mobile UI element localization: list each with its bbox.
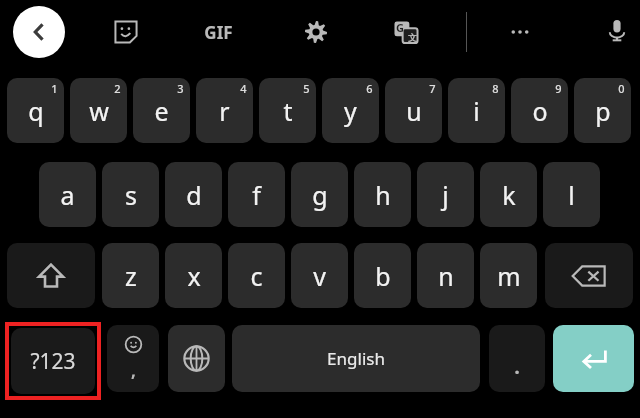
button[interactable]: k	[480, 162, 537, 227]
button[interactable]: Change language	[168, 325, 225, 392]
staticText: x	[187, 259, 201, 293]
staticText: 9	[555, 81, 562, 96]
button[interactable]: u	[385, 78, 442, 143]
staticText: c	[250, 259, 263, 293]
button[interactable]: v	[291, 243, 348, 308]
button[interactable]: t	[259, 78, 316, 143]
button[interactable]: f	[228, 162, 285, 227]
staticText: h	[375, 178, 391, 212]
staticText: GIF	[204, 21, 233, 44]
staticText: q	[28, 94, 44, 128]
button[interactable]: b	[354, 243, 411, 308]
staticText: u	[406, 94, 422, 128]
staticText: ?123	[30, 347, 76, 376]
staticText: v	[313, 259, 326, 293]
button[interactable]: Back	[13, 6, 65, 58]
button[interactable]: g	[291, 162, 348, 227]
button[interactable]: GIF	[193, 12, 243, 52]
staticText: g	[312, 178, 328, 212]
staticText: 0	[618, 81, 625, 96]
button[interactable]: c	[228, 243, 285, 308]
staticText: n	[438, 259, 454, 293]
button[interactable]: w	[70, 78, 127, 143]
button[interactable]: i	[448, 78, 505, 143]
staticText: t	[283, 94, 293, 128]
staticText: 6	[366, 81, 373, 96]
staticText: o	[532, 94, 548, 128]
button[interactable]: j	[417, 162, 474, 227]
staticText: m	[497, 259, 521, 293]
button[interactable]: x	[165, 243, 222, 308]
button[interactable]: a	[39, 162, 96, 227]
staticText: 2	[114, 81, 121, 96]
button[interactable]: p	[574, 78, 631, 143]
button[interactable]: m	[480, 243, 537, 308]
button[interactable]: Emoji and comma	[107, 325, 159, 392]
staticText: a	[60, 178, 75, 212]
button[interactable]: English	[232, 325, 480, 392]
button[interactable]: n	[417, 243, 474, 308]
button[interactable]: Voice input	[597, 10, 637, 50]
staticText: .	[514, 353, 520, 380]
staticText: e	[154, 94, 169, 128]
button[interactable]: Settings	[296, 12, 336, 52]
staticText: 3	[177, 81, 184, 96]
staticText: z	[125, 259, 137, 293]
button[interactable]: Stickers	[106, 12, 146, 52]
button[interactable]: More options	[500, 12, 540, 52]
staticText: y	[344, 94, 357, 128]
button[interactable]: ?123	[11, 328, 95, 394]
staticText: ,	[131, 359, 136, 382]
staticText: 5	[303, 81, 310, 96]
staticText: r	[219, 94, 230, 128]
button[interactable]: Translate	[386, 12, 426, 52]
button[interactable]: s	[102, 162, 159, 227]
button[interactable]: d	[165, 162, 222, 227]
staticText: 8	[492, 81, 499, 96]
staticText: b	[375, 259, 391, 293]
button[interactable]: o	[511, 78, 568, 143]
button[interactable]: r	[196, 78, 253, 143]
button[interactable]: l	[543, 162, 600, 227]
staticText: p	[595, 94, 611, 128]
button[interactable]: Shift	[7, 243, 95, 308]
staticText: 文	[408, 32, 417, 43]
button[interactable]: .	[489, 325, 545, 392]
staticText: j	[442, 178, 449, 212]
staticText: w	[89, 94, 109, 128]
staticText: 1	[51, 81, 58, 96]
staticText: l	[568, 178, 575, 212]
button[interactable]: Enter	[553, 325, 634, 392]
staticText: f	[252, 178, 261, 212]
button[interactable]: h	[354, 162, 411, 227]
button[interactable]: e	[133, 78, 190, 143]
staticText: i	[473, 94, 480, 128]
staticText: k	[502, 178, 516, 212]
staticText: s	[125, 178, 137, 212]
button[interactable]: z	[102, 243, 159, 308]
button[interactable]: y	[322, 78, 379, 143]
staticText: English	[327, 347, 385, 370]
staticText: 7	[429, 81, 436, 96]
button[interactable]: Backspace	[545, 243, 633, 308]
staticText: G	[396, 20, 404, 35]
staticText: 4	[240, 81, 247, 96]
staticText: d	[186, 178, 202, 212]
button[interactable]: q	[7, 78, 64, 143]
